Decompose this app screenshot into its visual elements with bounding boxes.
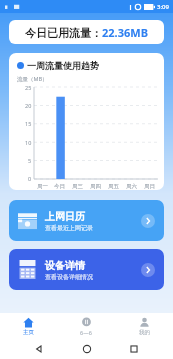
staticText: 我的: [139, 329, 150, 336]
button[interactable]: 设备详情: [141, 263, 155, 277]
button[interactable]: 上网日历: [141, 214, 155, 228]
staticText: 周一: [37, 183, 48, 190]
button[interactable]: Recents: [125, 340, 143, 358]
button[interactable]: 上网日历: [9, 200, 164, 241]
button[interactable]: 主页: [0, 313, 57, 339]
button[interactable]: Home: [78, 340, 96, 358]
staticText: 10: [25, 139, 32, 146]
staticText: 20: [25, 102, 32, 109]
staticText: 查看最近上网记录: [45, 224, 93, 232]
staticText: 周日: [144, 183, 155, 190]
staticText: 流量（MB）: [17, 75, 48, 83]
staticText: 25: [25, 84, 32, 91]
staticText: 设备详情: [45, 259, 85, 272]
staticText: 今日已用流量：: [25, 26, 102, 40]
staticText: 3:09: [157, 3, 169, 11]
staticText: 主页: [23, 329, 34, 336]
staticText: 今日: [54, 183, 65, 190]
staticText: 5: [28, 157, 32, 164]
staticText: 一周流量使用趋势: [27, 60, 99, 71]
button[interactable]: 设备详情: [9, 249, 164, 290]
staticText: 查看设备详细情况: [45, 273, 93, 281]
staticText: 周四: [90, 183, 101, 190]
staticText: 周六: [126, 183, 137, 190]
button[interactable]: Back: [30, 340, 48, 358]
button[interactable]: 我的: [115, 313, 173, 339]
staticText: 22.36MB: [102, 25, 148, 40]
staticText: 周五: [108, 183, 119, 190]
staticText: 周三: [72, 183, 83, 190]
staticText: 0: [28, 175, 32, 182]
button[interactable]: 6—6: [57, 313, 115, 339]
staticText: 15: [25, 120, 32, 127]
staticText: 上网日历: [45, 210, 85, 223]
staticText: 6—6: [80, 329, 92, 336]
button[interactable]: 今日已用流量：: [9, 20, 164, 44]
